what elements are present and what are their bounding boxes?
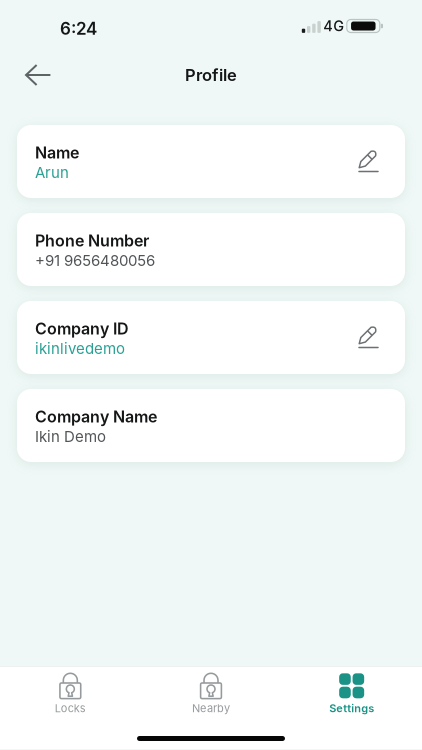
- staticText: Company Name: [35, 407, 157, 426]
- staticText: Nearby: [192, 702, 230, 715]
- button[interactable]: Back: [0, 54, 51, 92]
- staticText: +91 9656480056: [35, 252, 155, 269]
- button[interactable]: Settings: [281, 673, 422, 715]
- staticText: Profile: [185, 65, 237, 85]
- button[interactable]: Locks: [0, 673, 141, 715]
- staticText: ikinlivedemo: [35, 340, 125, 357]
- staticText: Locks: [55, 702, 86, 715]
- button[interactable]: Nearby: [141, 673, 281, 715]
- staticText: Company ID: [35, 319, 129, 338]
- staticText: Arun: [35, 164, 69, 181]
- staticText: Settings: [329, 702, 374, 715]
- staticText: 4G: [323, 17, 344, 34]
- button[interactable]: Edit: [352, 143, 385, 179]
- staticText: Name: [35, 143, 79, 162]
- staticText: 6:24: [60, 18, 97, 39]
- staticText: Phone Number: [35, 231, 149, 250]
- staticText: Ikin Demo: [35, 428, 106, 445]
- button[interactable]: Edit: [352, 319, 385, 355]
